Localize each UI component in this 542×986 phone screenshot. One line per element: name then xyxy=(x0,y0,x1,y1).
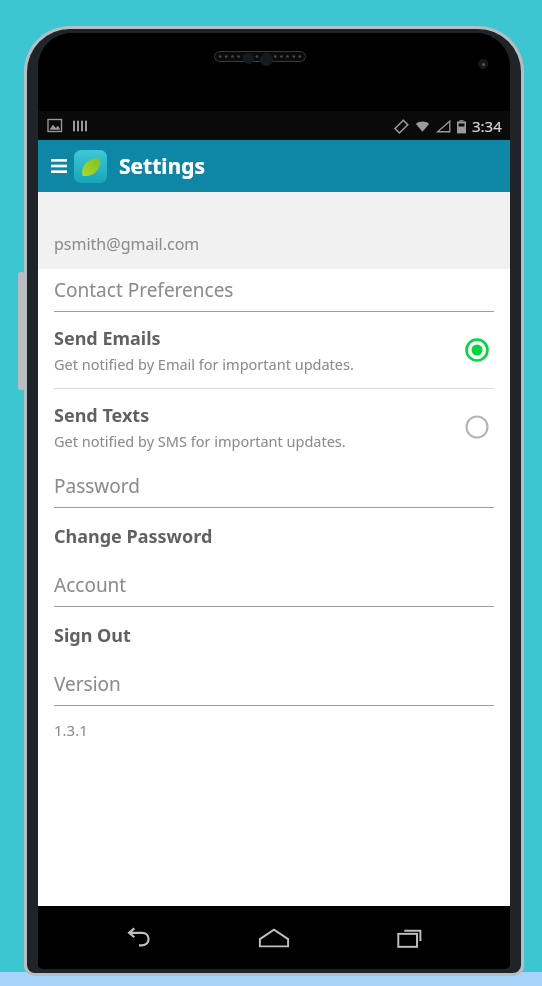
staticText: Account xyxy=(54,572,127,598)
staticText: Version xyxy=(54,671,121,697)
staticText: Get notified by Email for important upda… xyxy=(54,354,354,374)
staticText: Send Emails xyxy=(54,326,161,351)
button[interactable]: Back xyxy=(104,906,174,969)
button[interactable]: Send Texts xyxy=(54,389,494,465)
button[interactable]: Send Emails xyxy=(54,312,494,388)
staticText: 1.3.1 xyxy=(54,720,88,740)
staticText: Change Password xyxy=(54,524,213,549)
staticText: Send Texts xyxy=(54,403,150,428)
button[interactable]: Home xyxy=(239,906,309,969)
button[interactable]: Sign Out xyxy=(54,607,494,663)
staticText: Sign Out xyxy=(54,623,131,648)
staticText: Get notified by SMS for important update… xyxy=(54,431,346,451)
button[interactable]: Change Password xyxy=(54,508,494,564)
staticText: psmith@gmail.com xyxy=(54,233,200,255)
staticText: 3:34 xyxy=(472,116,502,136)
staticText: Password xyxy=(54,473,140,499)
button[interactable]: Open navigation menu xyxy=(46,146,72,186)
staticText: Settings xyxy=(119,152,206,181)
staticText: Contact Preferences xyxy=(54,277,234,303)
button[interactable]: App icon xyxy=(74,150,107,183)
button[interactable]: Recent apps xyxy=(375,906,445,969)
